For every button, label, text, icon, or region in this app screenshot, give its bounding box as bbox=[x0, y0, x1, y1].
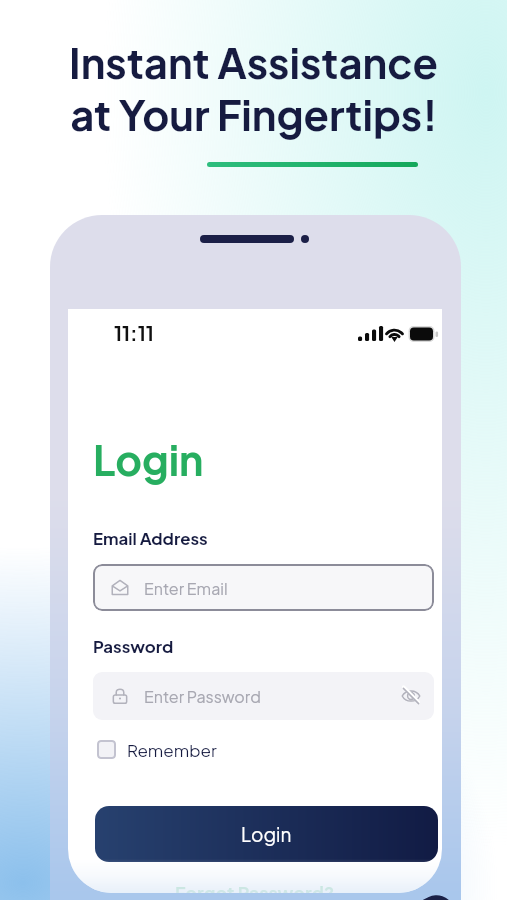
button[interactable]: Forgot Password? bbox=[175, 881, 335, 893]
button[interactable]: Login bbox=[95, 806, 438, 862]
staticText: Enter Password bbox=[144, 686, 261, 706]
staticText: Instant Assistance bbox=[69, 36, 438, 88]
staticText: at Your Fingertips! bbox=[70, 88, 438, 140]
button[interactable]: Show password bbox=[394, 679, 428, 713]
staticText: Remember bbox=[127, 739, 217, 760]
button[interactable]: Remember bbox=[94, 735, 217, 763]
staticText: Password bbox=[93, 636, 174, 657]
staticText: Login bbox=[241, 822, 292, 846]
button[interactable]: Enter Password bbox=[93, 672, 434, 720]
staticText: 11:11 bbox=[114, 320, 154, 345]
staticText: Email Address bbox=[93, 528, 208, 549]
button[interactable]: Enter Email bbox=[93, 564, 434, 611]
staticText: Enter Email bbox=[144, 578, 228, 598]
staticText: Login bbox=[93, 433, 204, 485]
